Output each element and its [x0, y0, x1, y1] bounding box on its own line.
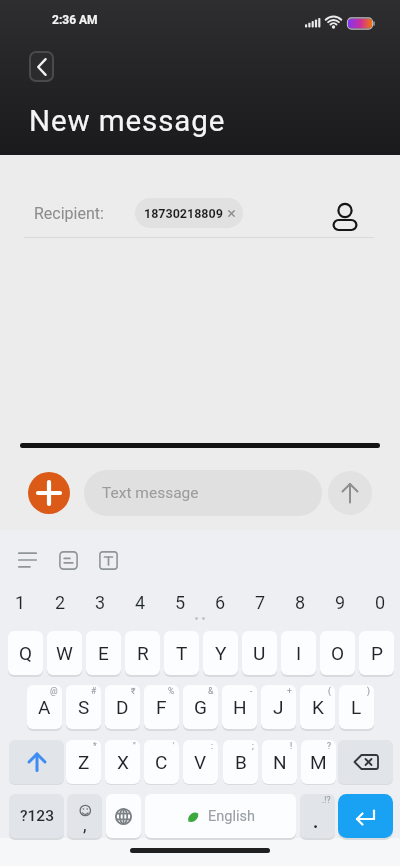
button[interactable]: M	[301, 740, 336, 784]
button[interactable]	[9, 740, 64, 784]
button[interactable]	[14, 548, 40, 572]
staticText: ₹	[131, 686, 136, 696]
button[interactable]: 3	[80, 589, 120, 615]
staticText: "	[133, 741, 136, 751]
button[interactable]: R	[125, 631, 160, 675]
staticText: T	[176, 642, 188, 664]
button[interactable]: 7	[240, 589, 280, 615]
button[interactable]	[55, 548, 81, 572]
button[interactable]	[28, 472, 70, 514]
button[interactable]	[338, 794, 393, 838]
staticText: *	[93, 741, 97, 751]
staticText: I	[296, 642, 302, 664]
staticText: Text message	[102, 484, 199, 502]
staticText: S	[78, 696, 90, 718]
button[interactable]: J	[261, 685, 296, 729]
staticText: !	[290, 741, 293, 751]
button[interactable]: I	[281, 631, 316, 675]
button[interactable]: 4	[120, 589, 160, 615]
button[interactable]: 0	[360, 589, 400, 615]
button[interactable]: D	[105, 685, 140, 729]
staticText: G	[194, 696, 207, 718]
staticText: :	[211, 741, 214, 751]
staticText: 1	[15, 592, 26, 613]
staticText: -	[250, 686, 253, 696]
button[interactable]: English	[145, 794, 296, 838]
button[interactable]: T	[164, 631, 199, 675]
button[interactable]: N	[262, 740, 297, 784]
button[interactable]: F	[144, 685, 179, 729]
staticText: C	[155, 751, 168, 773]
button[interactable]: Text message	[84, 470, 322, 516]
button[interactable]: Z	[66, 740, 101, 784]
button[interactable]: G	[183, 685, 218, 729]
button[interactable]: 5	[160, 589, 200, 615]
button[interactable]: S	[66, 685, 101, 729]
staticText: O	[331, 642, 345, 664]
button[interactable]	[95, 548, 121, 572]
staticText: H	[233, 696, 247, 718]
staticText: 6	[215, 592, 226, 613]
staticText: Z	[78, 751, 90, 773]
staticText: ?	[327, 741, 332, 751]
staticText: W	[56, 642, 73, 664]
button[interactable]: Y	[203, 631, 238, 675]
staticText: 9	[335, 592, 346, 613]
button[interactable]: X	[105, 740, 140, 784]
button[interactable]: ,	[67, 794, 102, 838]
staticText: L	[351, 696, 362, 718]
button[interactable]: O	[320, 631, 355, 675]
staticText: 18730218809	[144, 206, 223, 221]
button[interactable]: ?123	[9, 794, 64, 838]
staticText: 3	[95, 592, 106, 613]
staticText: +	[287, 686, 292, 696]
button[interactable]: C	[144, 740, 179, 784]
button[interactable]: U	[242, 631, 277, 675]
button[interactable]: 2	[40, 589, 80, 615]
button[interactable]: 1	[0, 589, 40, 615]
staticText: 5	[175, 592, 186, 613]
button[interactable]: H	[222, 685, 257, 729]
button[interactable]: A	[27, 685, 62, 729]
staticText: 8	[295, 592, 306, 613]
button[interactable]	[330, 197, 360, 233]
button[interactable]: L	[339, 685, 374, 729]
staticText: %	[168, 686, 175, 696]
button[interactable]: 9	[320, 589, 360, 615]
staticText: F	[156, 696, 167, 718]
button[interactable]: 18730218809	[135, 198, 243, 228]
staticText: )	[367, 686, 370, 696]
staticText: R	[137, 642, 149, 664]
staticText: .	[313, 811, 319, 832]
staticText: Recipient:	[34, 204, 104, 223]
button[interactable]	[29, 51, 54, 82]
staticText: ;	[252, 741, 254, 751]
button[interactable]: Q	[8, 631, 43, 675]
staticText: 0	[375, 592, 386, 613]
staticText: &	[208, 686, 214, 696]
staticText: 2:36 AM	[52, 13, 98, 27]
staticText: 2	[55, 592, 66, 613]
staticText: Y	[215, 642, 227, 664]
staticText: ?123	[20, 807, 54, 825]
button[interactable]: P	[359, 631, 394, 675]
button[interactable]: K	[300, 685, 335, 729]
button[interactable]: E	[86, 631, 121, 675]
staticText: ,	[83, 814, 87, 835]
button[interactable]: V	[183, 740, 218, 784]
button[interactable]: .	[300, 794, 335, 838]
button[interactable]	[328, 471, 372, 515]
button[interactable]: B	[223, 740, 258, 784]
button[interactable]: W	[47, 631, 82, 675]
staticText: 4	[135, 592, 146, 613]
staticText: @	[50, 686, 58, 696]
button[interactable]	[338, 740, 393, 784]
button[interactable]: 6	[200, 589, 240, 615]
staticText: M	[310, 751, 327, 773]
staticText: #	[91, 686, 97, 696]
staticText: .!?	[322, 795, 331, 805]
staticText: Q	[19, 642, 33, 664]
button[interactable]	[106, 794, 141, 838]
button[interactable]: 8	[280, 589, 320, 615]
staticText: K	[312, 696, 324, 718]
